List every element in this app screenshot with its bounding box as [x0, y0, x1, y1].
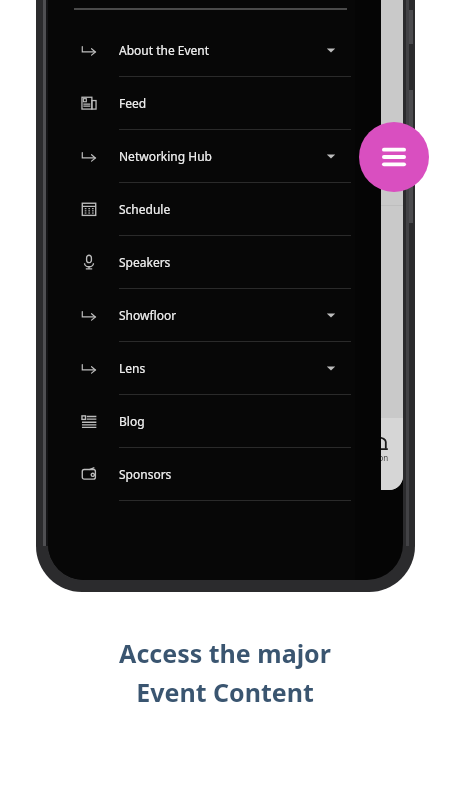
button[interactable]: Feed: [48, 77, 355, 130]
staticText: ations: [381, 452, 391, 474]
staticText: Sponsors: [119, 466, 172, 482]
staticText: Networking Hub: [119, 148, 212, 164]
button[interactable]: Speakers: [48, 236, 355, 289]
staticText: About the Event: [119, 42, 210, 58]
button[interactable]: Open menu: [359, 122, 429, 192]
staticText: Feed: [119, 95, 147, 111]
staticText: Schedule: [119, 201, 171, 217]
button[interactable]: Sponsors: [48, 448, 355, 501]
button[interactable]: Showfloor: [48, 289, 355, 342]
staticText: Showfloor: [119, 307, 177, 323]
staticText: Lens: [119, 360, 146, 376]
staticText: Access the major: [119, 636, 331, 670]
button[interactable]: Networking Hub: [48, 130, 355, 183]
staticText: Event Content: [136, 675, 314, 709]
staticText: Blog: [119, 413, 145, 429]
button[interactable]: Schedule: [48, 183, 355, 236]
button[interactable]: Lens: [48, 342, 355, 395]
button[interactable]: About the Event: [48, 24, 355, 77]
staticText: Speakers: [119, 254, 171, 270]
button[interactable]: Blog: [48, 395, 355, 448]
